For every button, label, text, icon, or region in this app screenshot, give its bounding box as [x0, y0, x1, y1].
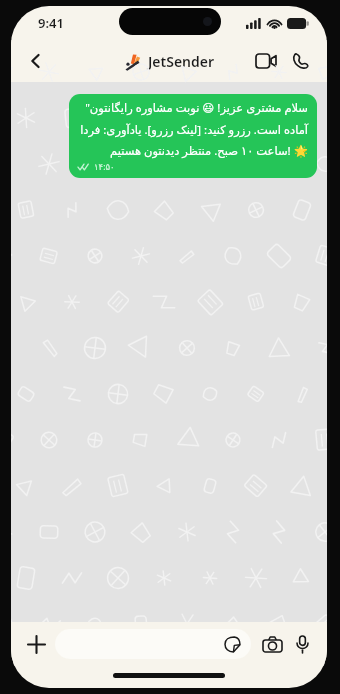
staticText: 9:41: [38, 14, 64, 32]
button[interactable]: Voice call: [283, 44, 317, 78]
staticText: ۱۴:۵۰: [94, 161, 115, 173]
button[interactable]: Back: [19, 44, 53, 78]
button[interactable]: Video call: [249, 44, 283, 78]
button[interactable]: Camera: [257, 629, 287, 659]
staticText: "سلام مشتری عزیز! 😃 نوبت مشاوره رایگانتو…: [78, 100, 308, 158]
other: Stickers: [222, 634, 242, 654]
button[interactable]: Attach: [21, 629, 51, 659]
staticText: JetSender: [148, 52, 215, 71]
button[interactable]: JetSender: [124, 52, 215, 71]
button[interactable]: Stickers: [55, 629, 251, 659]
button[interactable]: Voice message: [287, 629, 317, 659]
button[interactable]: "سلام مشتری عزیز! 😃 نوبت مشاوره رایگانتو…: [69, 94, 317, 178]
